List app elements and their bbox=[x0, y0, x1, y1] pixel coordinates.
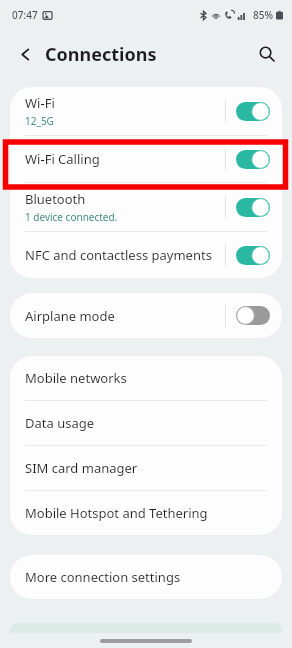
staticText: SIM card manager bbox=[25, 459, 138, 477]
button[interactable]: Back bbox=[8, 37, 42, 71]
staticText: Wi-Fi Calling bbox=[25, 150, 100, 168]
button[interactable]: NFC and contactless payments bbox=[10, 232, 282, 278]
button[interactable]: Data usage bbox=[10, 401, 282, 445]
staticText: Data usage bbox=[25, 414, 95, 432]
button[interactable]: Mobile networks bbox=[10, 356, 282, 400]
button[interactable]: On bbox=[236, 246, 270, 265]
staticText: NFC and contactless payments bbox=[25, 246, 212, 264]
staticText: Airplane mode bbox=[25, 307, 115, 325]
staticText: Bluetooth bbox=[25, 190, 86, 208]
button[interactable]: Mobile Hotspot and Tethering bbox=[10, 491, 282, 535]
button[interactable]: On bbox=[236, 150, 270, 169]
staticText: 12_5G bbox=[25, 114, 54, 128]
staticText: 07:47 bbox=[12, 8, 38, 22]
staticText: Connections bbox=[45, 42, 157, 67]
button[interactable]: Bluetooth bbox=[10, 183, 282, 231]
staticText: 1 device connected. bbox=[25, 210, 118, 224]
button[interactable]: On bbox=[236, 102, 270, 121]
button[interactable]: SIM card manager bbox=[10, 446, 282, 490]
button[interactable]: Airplane mode bbox=[10, 293, 282, 338]
button[interactable]: On bbox=[236, 198, 270, 217]
staticText: Mobile networks bbox=[25, 369, 127, 387]
button[interactable]: Search bbox=[250, 37, 284, 71]
button[interactable]: Wi-Fi bbox=[10, 87, 282, 135]
staticText: 85% bbox=[253, 8, 273, 22]
staticText: More connection settings bbox=[25, 568, 181, 586]
staticText: Mobile Hotspot and Tethering bbox=[25, 504, 208, 522]
button[interactable]: Wi-Fi Calling bbox=[10, 136, 282, 182]
button[interactable]: Off bbox=[236, 306, 270, 325]
button[interactable]: More connection settings bbox=[10, 555, 282, 599]
staticText: Wi-Fi bbox=[25, 94, 55, 112]
